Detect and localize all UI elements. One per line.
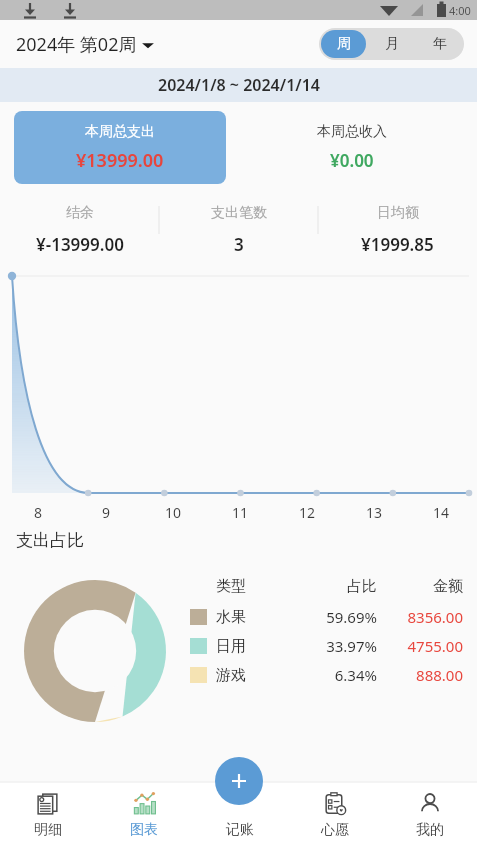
staticText: 支出笔数 (211, 204, 267, 222)
staticText: 年 (433, 35, 447, 53)
staticText: 明细 (34, 821, 62, 839)
staticText: 11 (232, 503, 249, 522)
staticText: 日均额 (377, 204, 419, 222)
staticText: 2024/1/8 ~ 2024/1/14 (158, 74, 320, 96)
button[interactable]: 图表 (96, 782, 192, 848)
staticText: 图表 (130, 821, 158, 839)
staticText: 结余 (66, 204, 94, 222)
staticText: 日用 (216, 637, 276, 656)
staticText: 14 (433, 503, 450, 522)
staticText: 9 (102, 503, 111, 522)
button[interactable]: 记账 (192, 782, 287, 848)
button[interactable]: 本周总收入 (226, 102, 477, 192)
button[interactable]: 类型 (190, 577, 463, 596)
staticText: 12 (299, 503, 316, 522)
staticText: 支出占比 (16, 530, 84, 551)
staticText: 类型 (216, 577, 276, 596)
button[interactable]: 明细 (0, 782, 96, 848)
button[interactable]: 周 (321, 30, 366, 58)
staticText: ¥0.00 (330, 149, 374, 172)
button[interactable]: 年 (418, 30, 462, 58)
staticText: 2024年 第02周 (16, 32, 137, 57)
staticText: 游戏 (216, 666, 276, 685)
staticText: 8 (34, 503, 43, 522)
button[interactable]: 游戏 (190, 665, 463, 685)
button[interactable]: 本周总支出 (14, 111, 226, 184)
staticText: ¥1999.85 (361, 233, 434, 256)
staticText: 心愿 (321, 821, 349, 839)
button[interactable]: 日用 (190, 636, 463, 656)
staticText: 金额 (385, 577, 463, 596)
staticText: 水果 (216, 608, 276, 627)
staticText: 本周总收入 (317, 123, 387, 141)
staticText: 33.97% (276, 636, 377, 656)
staticText: 10 (165, 503, 182, 522)
staticText: 本周总支出 (85, 123, 155, 141)
staticText: 占比 (276, 577, 377, 596)
staticText: 13 (366, 503, 383, 522)
button[interactable]: 2024年 第02周 (16, 32, 155, 57)
button[interactable]: 月 (370, 30, 414, 58)
staticText: ¥13999.00 (76, 148, 164, 173)
staticText: 4:00 (449, 3, 471, 18)
staticText: 59.69% (276, 607, 377, 627)
button[interactable]: 添加记账 (215, 757, 263, 805)
staticText: 月 (385, 35, 399, 53)
staticText: 记账 (226, 821, 254, 839)
button[interactable]: 心愿 (287, 782, 382, 848)
staticText: ¥-13999.00 (36, 233, 124, 256)
staticText: 周 (337, 35, 351, 53)
staticText: 3 (234, 233, 244, 256)
staticText: 8356.00 (385, 607, 463, 627)
staticText: 6.34% (276, 665, 377, 685)
staticText: 4755.00 (385, 636, 463, 656)
button[interactable]: 水果 (190, 607, 463, 627)
button[interactable]: 我的 (382, 782, 477, 848)
staticText: 我的 (416, 821, 444, 839)
staticText: 888.00 (385, 665, 463, 685)
